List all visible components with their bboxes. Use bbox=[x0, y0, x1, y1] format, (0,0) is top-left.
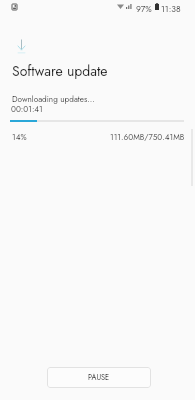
staticText: 97% bbox=[136, 3, 152, 15]
staticText: 111.60MB/750.41MB bbox=[110, 131, 185, 143]
staticText: Downloading updates... bbox=[12, 93, 95, 105]
staticText: PAUSE bbox=[88, 372, 110, 383]
staticText: 11:38 bbox=[161, 3, 181, 15]
staticText: 14% bbox=[12, 131, 27, 143]
other: Downloading bbox=[15, 39, 28, 53]
other: Battery bbox=[155, 3, 159, 10]
other: Wi-Fi bbox=[117, 4, 124, 9]
other: Notification bbox=[12, 4, 17, 10]
button[interactable]: PAUSE bbox=[47, 367, 151, 388]
staticText: 00:01:41 bbox=[11, 103, 43, 115]
staticText: Software update bbox=[12, 61, 108, 81]
other: Mobile signal bbox=[126, 4, 132, 9]
